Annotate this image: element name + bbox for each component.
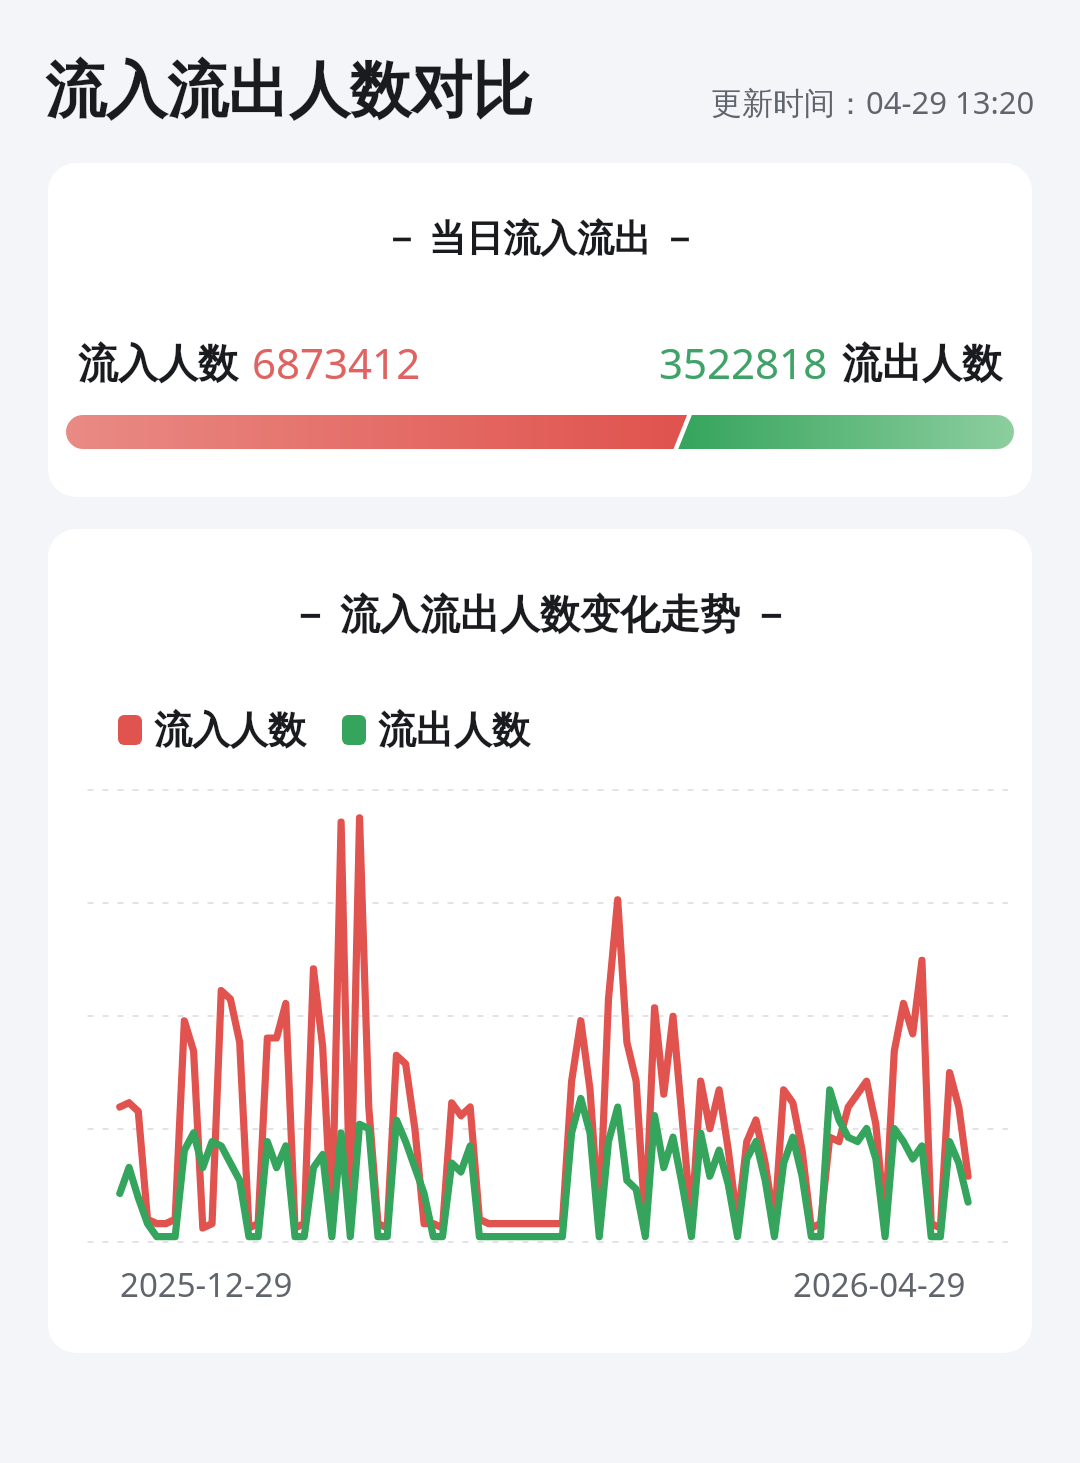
- staticText: － 当日流入流出 －: [48, 211, 1032, 262]
- staticText: 流入人数: [78, 338, 238, 388]
- button[interactable]: － 当日流入流出 －: [48, 163, 1032, 497]
- staticText: 6873412: [252, 334, 421, 391]
- staticText: 流入人数: [154, 706, 306, 754]
- staticText: － 流入流出人数变化走势 －: [48, 585, 1032, 640]
- staticText: 流出人数: [842, 338, 1002, 388]
- staticText: 2025-12-29: [120, 1262, 293, 1307]
- staticText: 更新时间：04-29 13:20: [711, 81, 1035, 123]
- button[interactable]: － 流入流出人数变化走势 －: [48, 529, 1032, 1353]
- staticText: 3522818: [659, 334, 828, 391]
- staticText: 流出人数: [378, 706, 530, 754]
- staticText: 流入流出人数对比: [45, 52, 533, 129]
- staticText: 2026-04-29: [793, 1262, 966, 1307]
